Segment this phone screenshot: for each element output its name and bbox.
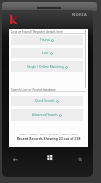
staticText: Quick Search	[35, 99, 55, 103]
button[interactable]: Found	[11, 35, 83, 45]
staticText: Single / Online Matching	[27, 65, 64, 69]
button[interactable]: Lost	[11, 48, 83, 58]
staticText: Found	[40, 38, 50, 42]
staticText: Home · Contact · About · Sitemap · Priva…	[9, 132, 88, 135]
staticText: Search Lost or Found database	[11, 88, 56, 92]
staticText: Advanced Search	[32, 113, 58, 117]
staticText: Lost	[42, 51, 49, 55]
button[interactable]: Quick Search	[11, 96, 83, 106]
button[interactable]: Search	[75, 153, 87, 165]
button[interactable]: Back	[10, 153, 22, 165]
button[interactable]: Start	[45, 152, 55, 162]
staticText: Lost or Found? Register details here	[11, 30, 63, 34]
button[interactable]: Advanced Search	[11, 109, 83, 121]
staticText: Recent Records Showing 23 out of 338	[9, 136, 88, 141]
button[interactable]: Single / Online Matching	[11, 61, 83, 72]
staticText: NOKIA	[72, 12, 88, 17]
